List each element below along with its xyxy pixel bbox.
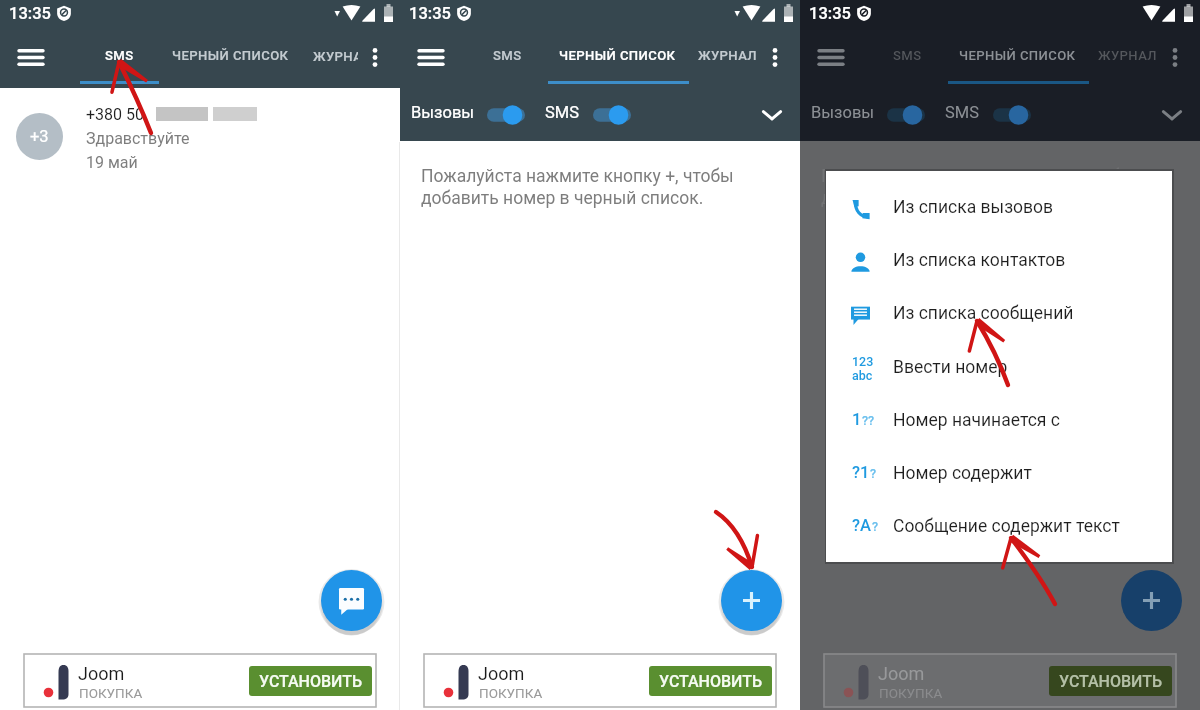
staticText: Из списка сообщений: [893, 303, 1074, 324]
staticText: Из списка контактов: [893, 250, 1066, 271]
staticText: УСТАНОВИТЬ: [259, 672, 363, 691]
button[interactable]: Menu: [419, 49, 443, 66]
staticText: 123: [852, 354, 874, 369]
button[interactable]: ЧЕРНЫЙ СПИСОК: [163, 30, 297, 88]
button[interactable]: 123: [826, 343, 1172, 396]
staticText: ??: [862, 413, 875, 428]
button[interactable]: SMS: [88, 30, 150, 88]
staticText: Joom: [78, 663, 125, 684]
staticText: SMS: [105, 48, 134, 63]
staticText: ЖУРНАЛ: [698, 48, 758, 63]
staticText: Вызовы: [411, 103, 475, 122]
staticText: Здравствуйте: [86, 129, 190, 148]
button[interactable]: ЧЕРНЫЙ СПИСОК: [550, 30, 684, 88]
staticText: Вызовы: [811, 103, 875, 122]
button[interactable]: 1: [826, 396, 1172, 449]
staticText: 13:35: [409, 4, 451, 23]
button[interactable]: Add: [1121, 570, 1182, 631]
staticText: SMS: [893, 48, 922, 63]
button[interactable]: Из списка контактов: [826, 236, 1172, 289]
staticText: ПОКУПКА: [479, 685, 543, 701]
button[interactable]: Из списка сообщений: [826, 289, 1172, 342]
button[interactable]: Toggle: [593, 102, 637, 128]
staticText: Сообщение содержит текст: [893, 516, 1120, 537]
button[interactable]: ?A: [826, 502, 1172, 555]
button[interactable]: УСТАНОВИТЬ: [649, 666, 772, 696]
staticText: 19 май: [86, 153, 138, 172]
button[interactable]: УСТАНОВИТЬ: [249, 666, 372, 696]
button[interactable]: Menu: [19, 49, 43, 66]
staticText: ПОКУПКА: [79, 685, 143, 701]
staticText: Из списка вызовов: [893, 197, 1054, 218]
button[interactable]: Toggle: [487, 102, 531, 128]
staticText: ?A: [852, 516, 872, 535]
button[interactable]: Joom: [424, 654, 776, 707]
button[interactable]: Joom: [824, 654, 1176, 707]
button[interactable]: ЖУРНАЛ: [313, 49, 358, 67]
staticText: SMS: [945, 103, 979, 122]
staticText: добавить номер в черный список.: [421, 188, 704, 209]
staticText: ?: [870, 466, 877, 481]
staticText: ПОКУПКА: [879, 685, 943, 701]
staticText: abc: [852, 368, 873, 383]
staticText: Joom: [878, 663, 925, 684]
button[interactable]: Expand: [760, 103, 784, 127]
staticText: +3: [30, 127, 49, 146]
button[interactable]: More options: [769, 48, 781, 67]
staticText: ЧЕРНЫЙ СПИСОК: [959, 48, 1076, 63]
button[interactable]: Joom: [24, 654, 376, 707]
staticText: 13:35: [9, 4, 51, 23]
button[interactable]: SMS: [476, 30, 538, 88]
button[interactable]: +3: [0, 88, 400, 188]
staticText: Номер начинается с: [893, 410, 1060, 431]
staticText: 1: [852, 410, 862, 429]
staticText: ?1: [852, 463, 870, 482]
staticText: добавить номер в черный список.: [821, 188, 1104, 209]
button[interactable]: Из списка вызовов: [826, 183, 1172, 236]
button[interactable]: More options: [369, 48, 381, 67]
button[interactable]: Add: [721, 570, 782, 631]
staticText: SMS: [493, 48, 522, 63]
staticText: Ввести номер: [893, 357, 1008, 378]
staticText: Пожалуйста нажмите кнопку +, чтобы: [421, 166, 734, 187]
staticText: +380 50: [86, 105, 145, 124]
button[interactable]: ?1: [826, 449, 1172, 502]
staticText: УСТАНОВИТЬ: [1059, 672, 1163, 691]
staticText: Joom: [478, 663, 525, 684]
button[interactable]: УСТАНОВИТЬ: [1049, 666, 1172, 696]
staticText: Номер содержит: [893, 463, 1032, 484]
staticText: ЖУРНАЛ: [313, 49, 358, 64]
staticText: УСТАНОВИТЬ: [659, 672, 763, 691]
staticText: SMS: [545, 103, 579, 122]
staticText: ЧЕРНЫЙ СПИСОК: [172, 48, 289, 63]
staticText: ЧЕРНЫЙ СПИСОК: [559, 48, 676, 63]
staticText: 13:35: [809, 4, 851, 23]
staticText: Пожалуйста нажмите кнопку +, чтобы: [821, 166, 1134, 187]
staticText: ?: [872, 519, 879, 534]
button[interactable]: ЖУРНАЛ: [692, 30, 764, 88]
staticText: ЖУРНАЛ: [1098, 48, 1158, 63]
button[interactable]: Add: [321, 570, 382, 631]
